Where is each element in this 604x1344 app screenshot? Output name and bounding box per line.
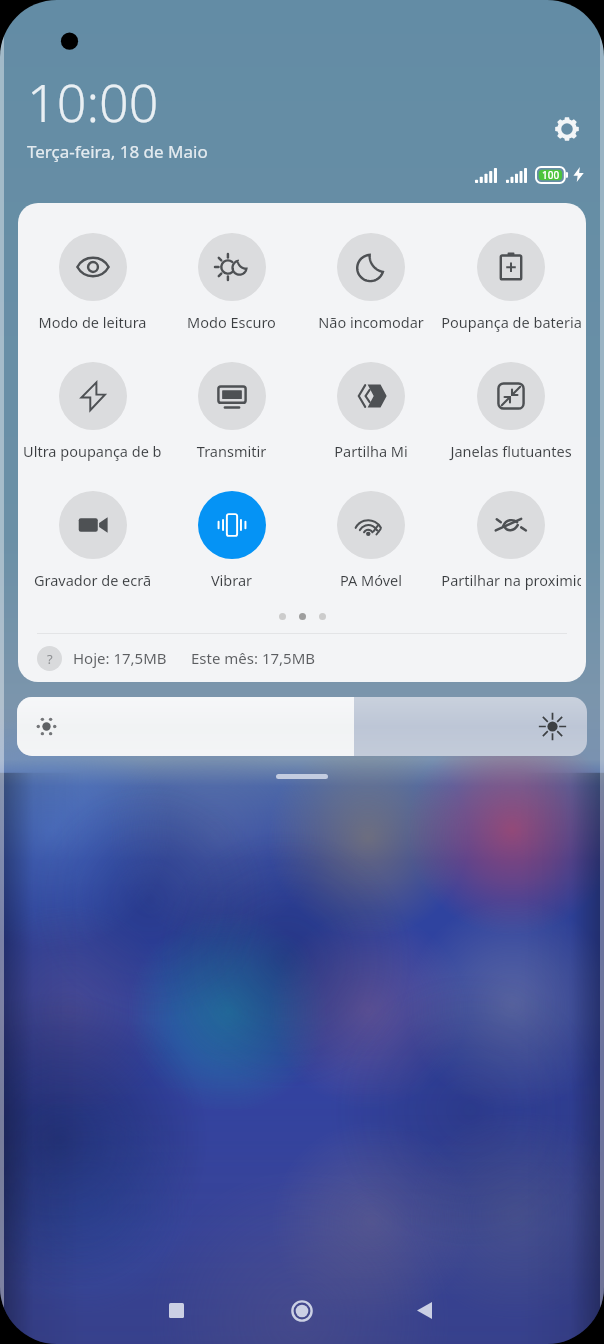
staticText: Não incomodar xyxy=(301,312,441,332)
button[interactable]: Transmitir xyxy=(162,362,301,461)
staticText: 100 xyxy=(542,168,560,182)
button[interactable]: Ultra poupança de bateria xyxy=(23,362,162,461)
staticText: Partilha Mi xyxy=(301,441,441,461)
staticText: PA Móvel xyxy=(301,570,441,590)
button[interactable]: Vibrar xyxy=(162,491,301,590)
staticText: Este mês: 17,5MB xyxy=(191,648,316,668)
button[interactable]: Home xyxy=(278,1287,325,1334)
staticText: Partilhar na proximidade xyxy=(441,570,581,590)
button[interactable]: Brightness xyxy=(17,697,587,756)
button[interactable]: Recents xyxy=(153,1287,200,1334)
staticText: Hoje: 17,5MB xyxy=(73,648,167,668)
button[interactable]: Poupança de bateria xyxy=(441,233,581,332)
button[interactable]: Back xyxy=(401,1287,448,1334)
staticText: 10:00 xyxy=(27,66,159,137)
button[interactable]: Gravador de ecrã xyxy=(23,491,162,590)
staticText: Terça-feira, 18 de Maio xyxy=(27,140,208,163)
staticText: Vibrar xyxy=(162,570,301,590)
button[interactable]: Partilhar na proximidade xyxy=(441,491,581,590)
button[interactable]: Settings xyxy=(555,117,579,141)
button[interactable]: Modo de leitura xyxy=(23,233,162,332)
staticText: Gravador de ecrã xyxy=(23,570,162,590)
button[interactable]: Modo Escuro xyxy=(162,233,301,332)
button[interactable]: Partilha Mi xyxy=(301,362,441,461)
button[interactable]: PA Móvel xyxy=(301,491,441,590)
staticText: Modo Escuro xyxy=(162,312,301,332)
staticText: Modo de leitura xyxy=(23,312,162,332)
button[interactable]: Janelas flutuantes xyxy=(441,362,581,461)
button[interactable]: Não incomodar xyxy=(301,233,441,332)
staticText: Janelas flutuantes xyxy=(441,441,581,461)
staticText: Ultra poupança de bateria xyxy=(23,441,162,461)
staticText: Poupança de bateria xyxy=(441,312,581,332)
staticText: Transmitir xyxy=(162,441,301,461)
staticText: ? xyxy=(47,650,53,668)
